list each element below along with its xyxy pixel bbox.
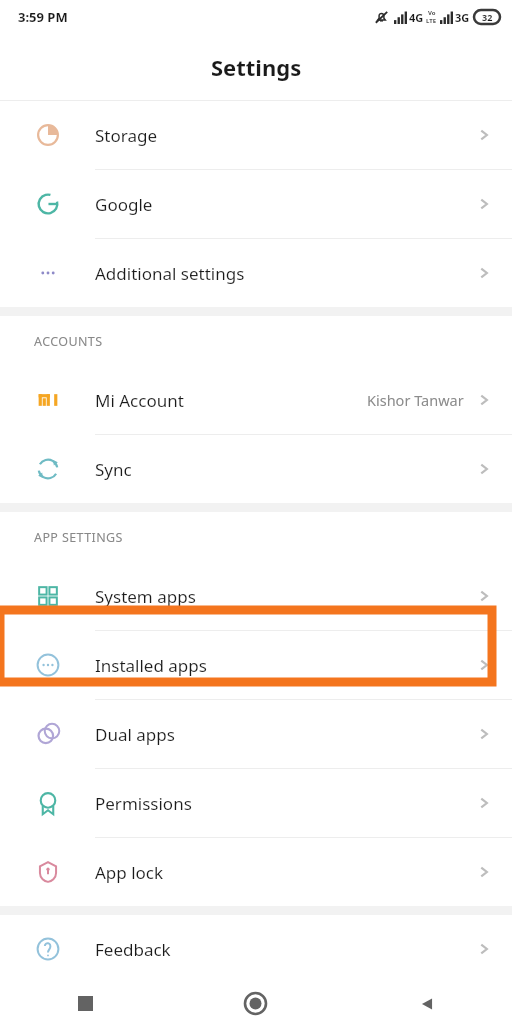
staticText: ACCOUNTS	[34, 333, 103, 350]
staticText: System apps	[95, 585, 196, 608]
button[interactable]: Additional settings	[0, 239, 512, 307]
staticText: 4G	[409, 10, 424, 25]
staticText: Vo	[428, 9, 436, 17]
staticText: Sync	[95, 458, 132, 481]
staticText: LTE	[426, 17, 437, 25]
staticText: 3G	[455, 10, 470, 25]
staticText: Dual apps	[95, 723, 175, 746]
button[interactable]: Storage	[0, 101, 512, 169]
staticText: Storage	[95, 124, 158, 147]
button[interactable]: Back	[341, 983, 512, 1024]
button[interactable]: Feedback	[0, 915, 512, 983]
button[interactable]: Dual apps	[0, 700, 512, 768]
button[interactable]: App lock	[0, 838, 512, 906]
button[interactable]: Sync	[0, 435, 512, 503]
button[interactable]: Mi Account	[0, 366, 512, 434]
staticText: Permissions	[95, 792, 192, 815]
staticText: 3:59 PM	[18, 8, 68, 26]
staticText: Feedback	[95, 938, 171, 961]
button[interactable]: Google	[0, 170, 512, 238]
staticText: Mi Account	[95, 389, 184, 412]
button[interactable]: Home	[170, 983, 341, 1024]
staticText: Installed apps	[95, 654, 207, 677]
button[interactable]: Installed apps	[0, 631, 512, 699]
staticText: Settings	[211, 52, 302, 82]
staticText: 32	[482, 11, 493, 23]
button[interactable]: System apps	[0, 562, 512, 630]
staticText: Kishor Tanwar	[367, 390, 464, 410]
staticText: App lock	[95, 861, 164, 884]
button[interactable]: Permissions	[0, 769, 512, 837]
staticText: Additional settings	[95, 262, 245, 285]
button[interactable]: Recent apps	[0, 983, 170, 1024]
staticText: APP SETTINGS	[34, 529, 123, 546]
staticText: Google	[95, 193, 153, 216]
